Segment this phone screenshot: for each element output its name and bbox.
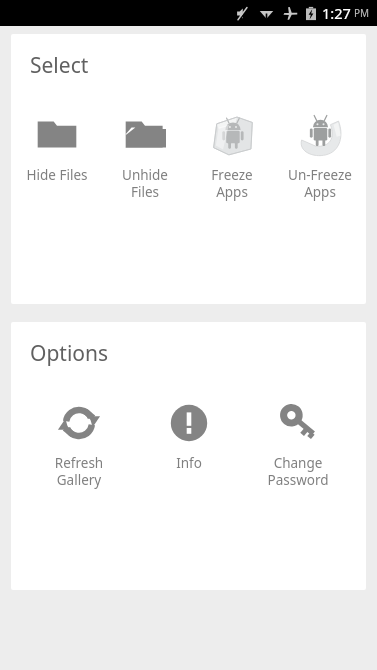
- button[interactable]: Info: [148, 400, 230, 472]
- staticText: Freeze Apps: [191, 166, 273, 201]
- staticText: Hide Files: [16, 166, 98, 184]
- staticText: Unhide Files: [104, 166, 186, 201]
- button[interactable]: Un-Freeze Apps: [279, 112, 361, 201]
- button[interactable]: Hide Files: [16, 112, 98, 184]
- button[interactable]: Unhide Files: [104, 112, 186, 201]
- staticText: Un-Freeze Apps: [279, 166, 361, 201]
- button[interactable]: Freeze Apps: [191, 112, 273, 201]
- staticText: Options: [30, 339, 109, 368]
- button[interactable]: Refresh Gallery: [38, 400, 120, 489]
- staticText: PM: [354, 6, 370, 20]
- staticText: Change Password: [257, 454, 339, 489]
- staticText: Refresh Gallery: [38, 454, 120, 489]
- staticText: Info: [148, 454, 230, 472]
- staticText: 1:27: [322, 3, 351, 23]
- button[interactable]: Change Password: [257, 400, 339, 489]
- staticText: Select: [30, 51, 89, 80]
